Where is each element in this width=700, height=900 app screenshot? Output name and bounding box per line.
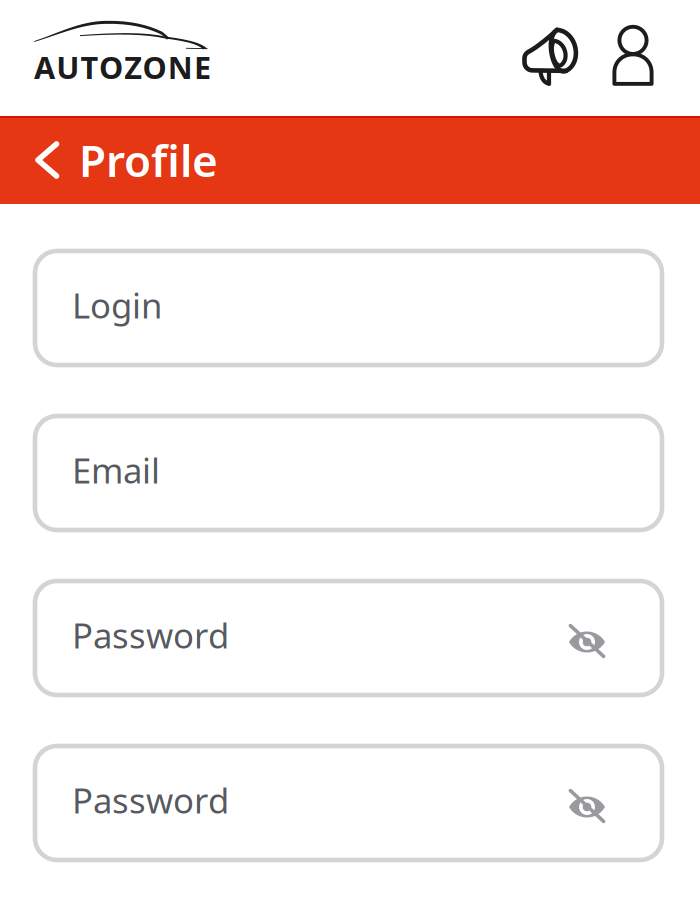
staticText: Login [72, 282, 162, 328]
staticText: Profile [79, 131, 218, 189]
staticText: Password [72, 777, 229, 823]
button[interactable]: Back [17, 116, 79, 204]
button[interactable]: Account [612, 24, 654, 90]
staticText: AUTOZONE [34, 47, 211, 87]
button[interactable]: Show password [550, 598, 624, 678]
button[interactable]: Show password [550, 763, 624, 843]
staticText: Password [72, 612, 229, 658]
button[interactable]: Promotions [519, 24, 581, 90]
staticText: Email [72, 447, 160, 493]
